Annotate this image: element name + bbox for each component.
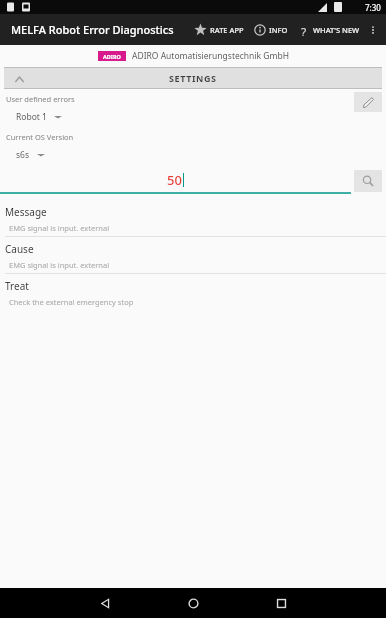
button[interactable]: ? bbox=[296, 20, 362, 40]
staticText: Cause bbox=[5, 242, 34, 256]
staticText: Treat bbox=[5, 279, 29, 293]
staticText: WHAT'S NEW bbox=[313, 25, 360, 35]
button[interactable]: Recent apps bbox=[266, 588, 296, 618]
staticText: 7:30 bbox=[365, 2, 381, 13]
staticText: SETTINGS bbox=[169, 72, 217, 84]
button[interactable]: Search bbox=[354, 170, 382, 192]
staticText: ADIRO bbox=[103, 53, 121, 60]
button[interactable]: 50 bbox=[0, 168, 351, 194]
button[interactable]: Back bbox=[90, 588, 120, 618]
staticText: ? bbox=[301, 24, 307, 36]
staticText: EMG signal is input. external bbox=[9, 260, 110, 270]
button[interactable]: More options bbox=[362, 14, 384, 45]
button[interactable]: SETTINGS bbox=[4, 67, 382, 89]
button[interactable]: Robot 1 bbox=[16, 110, 62, 124]
staticText: 50 bbox=[167, 171, 182, 189]
staticText: Current OS Version bbox=[6, 132, 74, 142]
staticText: Check the external emergency stop bbox=[9, 297, 134, 307]
staticText: User defined errors bbox=[6, 94, 75, 104]
button[interactable]: Edit bbox=[354, 92, 382, 112]
button[interactable]: Home bbox=[178, 588, 208, 618]
staticText: EMG signal is input. external bbox=[9, 223, 110, 233]
button[interactable]: INFO bbox=[252, 20, 290, 40]
staticText: s6s bbox=[16, 149, 30, 161]
staticText: Robot 1 bbox=[16, 111, 47, 123]
staticText: ADIRO Automatisierungstechnik GmbH bbox=[132, 50, 289, 62]
staticText: Message bbox=[5, 205, 47, 219]
staticText: MELFA Robot Error Diagnostics bbox=[11, 22, 174, 37]
staticText: INFO bbox=[269, 25, 288, 35]
staticText: RATE APP bbox=[210, 25, 244, 35]
button[interactable]: s6s bbox=[16, 148, 45, 162]
button[interactable]: RATE APP bbox=[192, 19, 246, 40]
